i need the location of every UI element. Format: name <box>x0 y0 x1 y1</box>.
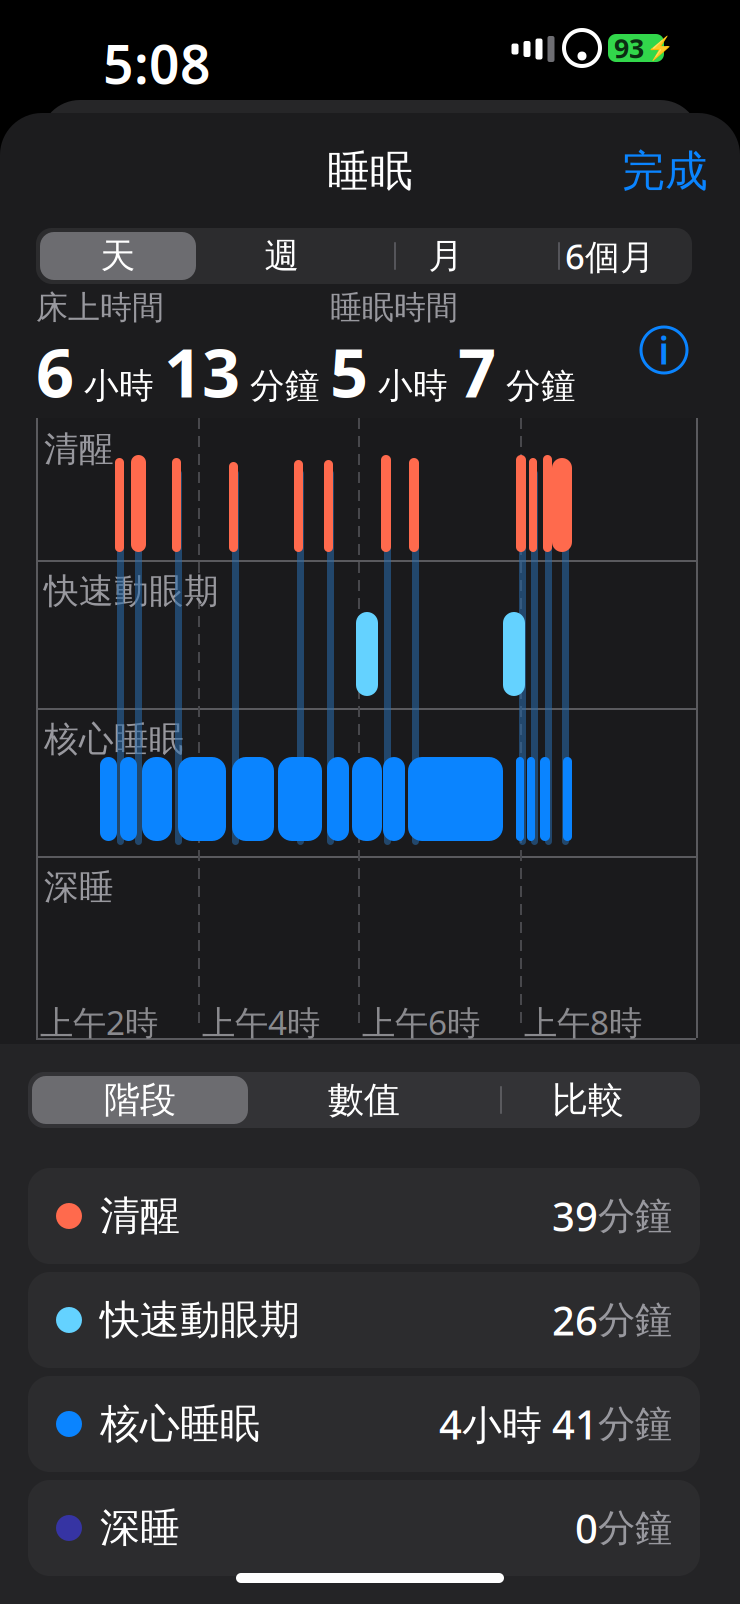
staticText: 深睡 <box>44 866 114 909</box>
staticText: 分鐘 <box>598 1297 672 1343</box>
staticText: 分鐘 <box>598 1401 672 1447</box>
button[interactable]: 深睡 <box>28 1480 700 1576</box>
staticText: 週 <box>264 235 299 277</box>
staticText: 清醒 <box>100 1191 180 1240</box>
staticText: 4小時 41 <box>439 1397 598 1450</box>
staticText: 深睡 <box>100 1503 180 1552</box>
staticText: 分鐘 <box>598 1505 672 1551</box>
staticText: 2024年9月19日 <box>36 416 281 462</box>
staticText: 93 <box>614 30 644 66</box>
staticText: 分鐘 <box>598 1193 672 1239</box>
staticText: 上午6時 <box>362 1000 480 1044</box>
staticText: 上午8時 <box>524 1000 642 1044</box>
staticText: 39 <box>552 1189 598 1242</box>
staticText: 上午2時 <box>40 1000 158 1044</box>
button[interactable]: 快速動眼期 <box>28 1272 700 1368</box>
button[interactable]: 數值 <box>252 1072 476 1128</box>
staticText: 快速動眼期 <box>100 1295 300 1344</box>
staticText: 0 <box>575 1501 598 1554</box>
button[interactable]: 核心睡眠 <box>28 1376 700 1472</box>
staticText: 比較 <box>552 1078 624 1122</box>
staticText: ⚡ <box>646 35 674 61</box>
staticText: 分鐘 <box>240 365 320 407</box>
staticText: 13 <box>164 327 240 416</box>
staticText: 7 <box>458 327 496 416</box>
staticText: 月 <box>428 235 463 277</box>
staticText: 核心睡眠 <box>44 718 184 761</box>
staticText: i <box>658 325 669 375</box>
staticText: 床上時間 <box>36 288 164 327</box>
staticText: 階段 <box>104 1078 176 1122</box>
button[interactable]: 月 <box>364 228 528 284</box>
staticText: 分鐘 <box>496 365 576 407</box>
button[interactable]: 週 <box>200 228 364 284</box>
button[interactable]: 清醒 <box>28 1168 700 1264</box>
button[interactable]: 完成 <box>608 135 722 207</box>
staticText: 6 <box>36 327 74 416</box>
staticText: 清醒 <box>44 428 114 471</box>
staticText: 上午4時 <box>202 1000 320 1044</box>
button[interactable]: 6個月 <box>528 228 692 284</box>
staticText: 核心睡眠 <box>100 1399 260 1448</box>
staticText: 快速動眼期 <box>44 570 219 613</box>
staticText: 6個月 <box>565 233 655 279</box>
staticText: 5:08 <box>103 28 211 99</box>
staticText: 26 <box>552 1293 598 1346</box>
staticText: 天 <box>100 235 135 277</box>
button[interactable]: 天 <box>36 228 200 284</box>
button[interactable]: 關於睡眠資料 <box>634 320 694 380</box>
staticText: 5 <box>330 327 368 416</box>
staticText: 完成 <box>622 145 708 197</box>
button[interactable]: 階段 <box>28 1072 252 1128</box>
button[interactable]: 比較 <box>476 1072 700 1128</box>
staticText: 小時 <box>74 365 164 407</box>
staticText: 睡眠時間 <box>330 288 458 327</box>
staticText: 睡眠 <box>327 145 413 197</box>
staticText: 數值 <box>328 1078 400 1122</box>
staticText: 小時 <box>368 365 458 407</box>
